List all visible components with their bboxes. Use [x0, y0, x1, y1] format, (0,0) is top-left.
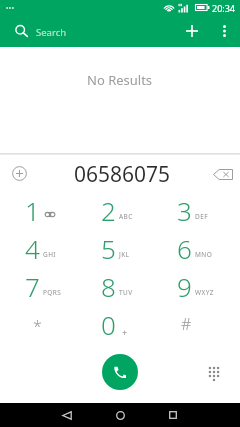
staticText: 1: [25, 193, 40, 228]
button[interactable]: Back: [54, 403, 80, 427]
staticText: *: [33, 315, 42, 337]
staticText: MNO: [195, 250, 213, 259]
button[interactable]: Search: [42, 25, 81, 38]
staticText: 0: [101, 307, 116, 342]
button[interactable]: #: [158, 305, 234, 343]
staticText: PQRS: [43, 288, 62, 297]
button[interactable]: *: [6, 305, 82, 343]
button[interactable]: 0: [82, 305, 158, 343]
button[interactable]: Add to contacts: [2, 156, 36, 190]
button[interactable]: 7: [6, 267, 82, 305]
staticText: Search: [36, 26, 67, 39]
button[interactable]: Recents: [160, 403, 186, 427]
staticText: 6: [177, 231, 192, 266]
staticText: TUV: [119, 288, 133, 297]
staticText: 9: [177, 269, 192, 304]
button[interactable]: 6: [158, 229, 234, 267]
button[interactable]: 3: [158, 191, 234, 229]
button[interactable]: Backspace: [206, 157, 240, 191]
button[interactable]: 1: [6, 191, 82, 229]
staticText: ABC: [119, 212, 133, 221]
staticText: 5: [101, 231, 116, 266]
staticText: GHI: [43, 250, 56, 259]
button[interactable]: More options: [208, 15, 240, 47]
button[interactable]: Search: [0, 15, 42, 47]
staticText: WXYZ: [195, 288, 214, 297]
button[interactable]: Add contact: [176, 15, 208, 47]
staticText: JKL: [119, 250, 130, 259]
staticText: #: [181, 313, 192, 335]
staticText: 20:34: [212, 2, 236, 14]
staticText: 8: [101, 269, 116, 304]
button[interactable]: Dialpad: [199, 358, 229, 388]
button[interactable]: 2: [82, 191, 158, 229]
staticText: 3: [177, 193, 192, 228]
button[interactable]: 5: [82, 229, 158, 267]
button[interactable]: 8: [82, 267, 158, 305]
staticText: 06586075: [74, 160, 171, 189]
staticText: 2: [101, 193, 116, 228]
button[interactable]: 4: [6, 229, 82, 267]
button[interactable]: 9: [158, 267, 234, 305]
staticText: No Results: [87, 71, 153, 89]
staticText: +: [122, 326, 128, 338]
button[interactable]: Call: [102, 354, 138, 390]
staticText: 4: [25, 231, 40, 266]
staticText: 7: [25, 269, 40, 304]
button[interactable]: Home: [107, 403, 133, 427]
staticText: DEF: [195, 212, 208, 221]
